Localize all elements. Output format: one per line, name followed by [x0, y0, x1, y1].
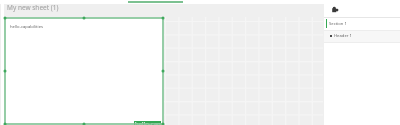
staticText: hello-capabilities: [135, 120, 162, 125]
button[interactable]: hello-capabilities: [134, 121, 161, 125]
staticText: My new sheet (1): [7, 3, 59, 12]
button[interactable]: Header 1: [324, 31, 400, 42]
button[interactable]: Add-ons: [324, 0, 400, 17]
button[interactable]: hello-capabilities: [4, 17, 164, 125]
other: Add-ons: [332, 6, 340, 14]
staticText: Section 1: [329, 21, 347, 27]
button[interactable]: Section 1: [324, 18, 400, 30]
staticText: Header 1: [334, 33, 352, 39]
staticText: hello-capabilities: [10, 24, 44, 30]
